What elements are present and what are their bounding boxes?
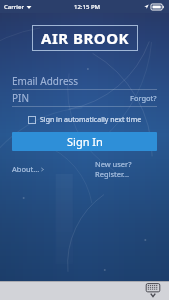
staticText: Sign in automatically next time (40, 115, 142, 125)
button[interactable]: About... (12, 162, 40, 176)
staticText: Sign In (67, 134, 103, 149)
button[interactable]: Hide keyboard (145, 283, 161, 298)
staticText: Email Address (12, 74, 79, 88)
staticText: AIR BROOK (41, 28, 129, 48)
button[interactable]: Sign In (12, 132, 157, 151)
staticText: 12:15 PM (74, 3, 101, 11)
button[interactable]: New user? Register... (40, 157, 157, 181)
staticText: About... (12, 164, 40, 174)
button[interactable]: Sign in automatically next time (0, 113, 169, 127)
button[interactable]: PIN (0, 90, 169, 107)
staticText: PIN (12, 91, 30, 105)
button[interactable]: Forgot? (130, 93, 157, 103)
button[interactable]: Email Address (0, 73, 169, 90)
staticText: New user? Register... (95, 159, 157, 179)
staticText: Carrier (4, 3, 24, 11)
